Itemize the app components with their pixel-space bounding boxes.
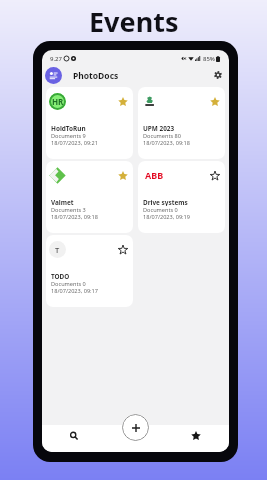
button[interactable]: Search: [42, 425, 135, 452]
staticText: HR: [52, 96, 64, 107]
staticText: TODO: [51, 272, 70, 280]
button[interactable]: Favorite: [118, 245, 128, 255]
button[interactable]: Unfavorite: [210, 97, 220, 107]
staticText: T: [55, 245, 60, 255]
staticText: 18/07/2023, 09:17: [51, 287, 99, 294]
button[interactable]: Favorite: [210, 171, 220, 181]
staticText: 9.27: [50, 55, 62, 63]
staticText: Documents 9: [51, 132, 86, 139]
staticText: Documents 80: [143, 132, 182, 139]
staticText: ABB: [145, 169, 164, 181]
button[interactable]: Favorites: [135, 425, 229, 452]
button[interactable]: Settings: [211, 68, 225, 82]
button[interactable]: Unfavorite: [46, 161, 133, 233]
button[interactable]: HR: [46, 87, 133, 159]
button[interactable]: T: [46, 235, 133, 307]
staticText: 18/07/2023, 09:21: [51, 139, 99, 146]
staticText: Valmet: [51, 198, 74, 206]
staticText: 18/07/2023, 09:18: [51, 213, 99, 220]
staticText: Events: [89, 3, 179, 40]
staticText: Documents 0: [51, 280, 86, 287]
staticText: Documents 0: [143, 206, 178, 213]
staticText: 85%: [203, 55, 215, 63]
button[interactable]: Profile: [45, 67, 62, 84]
button[interactable]: Unfavorite: [118, 97, 128, 107]
staticText: UPM 2023: [143, 124, 175, 132]
button[interactable]: Add: [122, 414, 149, 441]
staticText: PhotoDocs: [73, 70, 119, 82]
staticText: 18/07/2023, 09:18: [143, 139, 191, 146]
staticText: HoldToRun: [51, 124, 86, 132]
staticText: 18/07/2023, 09:19: [143, 213, 191, 220]
staticText: Documents 3: [51, 206, 86, 213]
staticText: Drive systems: [143, 198, 188, 206]
button[interactable]: Unfavorite: [118, 171, 128, 181]
button[interactable]: Unfavorite: [138, 87, 225, 159]
button[interactable]: ABB: [138, 161, 225, 233]
